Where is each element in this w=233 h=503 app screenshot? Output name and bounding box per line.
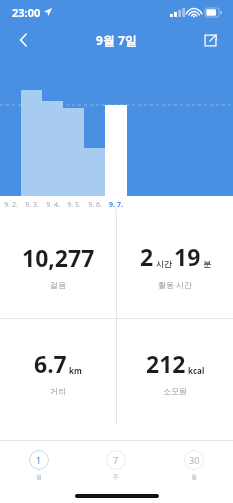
- staticText: 212: [146, 348, 186, 379]
- staticText: 9월 7일: [96, 32, 137, 48]
- staticText: 9. 6.: [88, 200, 102, 210]
- button[interactable]: 212: [117, 319, 233, 424]
- staticText: 9. 3.: [25, 200, 39, 210]
- staticText: 9. 2.: [4, 200, 18, 210]
- staticText: 6.7: [34, 348, 67, 379]
- staticText: 30: [189, 454, 200, 466]
- staticText: 주: [113, 473, 119, 481]
- staticText: kcal: [188, 365, 205, 376]
- button[interactable]: 7: [77, 441, 155, 489]
- staticText: 19: [174, 241, 201, 272]
- staticText: 일: [36, 473, 42, 481]
- button[interactable]: 6.7: [0, 319, 116, 424]
- staticText: 활동 시간: [158, 279, 193, 290]
- staticText: 1: [36, 454, 42, 466]
- button[interactable]: 1: [0, 441, 77, 489]
- staticText: 거리: [50, 386, 66, 396]
- staticText: 분: [203, 259, 211, 269]
- staticText: 시간: [156, 259, 172, 269]
- staticText: 10,277: [22, 242, 95, 273]
- button[interactable]: 10,277: [0, 213, 116, 318]
- button[interactable]: 30: [155, 441, 233, 489]
- staticText: 9. 5.: [67, 200, 81, 210]
- staticText: 9. 7.: [109, 200, 123, 210]
- button[interactable]: Back: [8, 24, 40, 56]
- staticText: km: [69, 365, 82, 376]
- staticText: 7: [113, 454, 119, 466]
- staticText: 월: [191, 473, 197, 481]
- button[interactable]: 2: [117, 213, 233, 318]
- staticText: 소모됨: [163, 386, 187, 396]
- staticText: 9. 4.: [46, 200, 60, 210]
- staticText: 걸음: [50, 280, 66, 290]
- staticText: 2: [140, 241, 154, 272]
- button[interactable]: Share: [195, 25, 225, 55]
- staticText: 23:00: [12, 5, 41, 20]
